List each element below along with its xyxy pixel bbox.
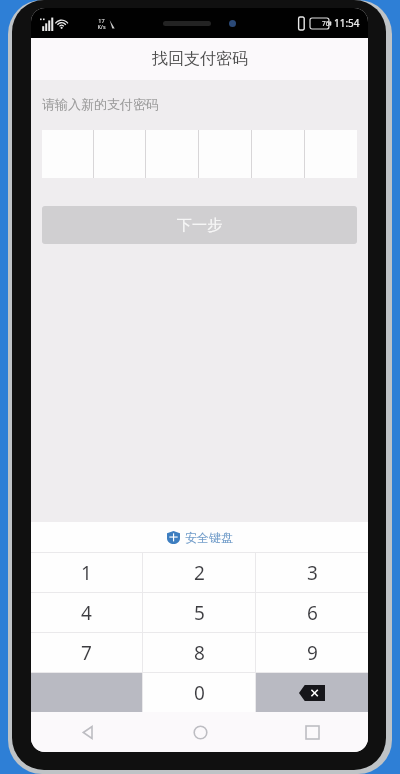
button[interactable]: 3	[256, 553, 368, 592]
staticText: 11:54	[334, 16, 360, 30]
button[interactable]: 1	[31, 553, 142, 592]
button[interactable]: 8	[143, 633, 255, 672]
staticText: 5	[194, 600, 205, 626]
staticText: 1	[81, 560, 92, 586]
button[interactable]: 4	[31, 593, 142, 632]
staticText: 4	[81, 600, 92, 626]
staticText: 0	[194, 680, 205, 706]
button[interactable]: Recents	[256, 712, 368, 752]
button[interactable]: 9	[256, 633, 368, 672]
staticText: 2	[194, 560, 205, 586]
staticText: 找回支付密码	[152, 49, 248, 69]
staticText: 6	[307, 600, 318, 626]
button[interactable]: 下一步	[42, 206, 357, 244]
button[interactable]: Back	[31, 712, 144, 752]
button[interactable]: 0	[143, 673, 255, 712]
button[interactable]: Home	[144, 712, 256, 752]
button[interactable]: 2	[143, 553, 255, 592]
staticText: 7	[81, 640, 92, 666]
button[interactable]: 6	[256, 593, 368, 632]
staticText: 3	[307, 560, 318, 586]
button[interactable]: Delete	[256, 673, 368, 712]
staticText: 17 K/s	[97, 17, 106, 30]
staticText: 下一步	[177, 216, 222, 235]
staticText: 请输入新的支付密码	[42, 96, 159, 112]
button[interactable]: 5	[143, 593, 255, 632]
staticText: 76	[322, 19, 330, 28]
staticText: 安全键盘	[185, 530, 233, 545]
staticText: 8	[194, 640, 205, 666]
button[interactable]: 7	[31, 633, 142, 672]
staticText: 9	[307, 640, 318, 666]
